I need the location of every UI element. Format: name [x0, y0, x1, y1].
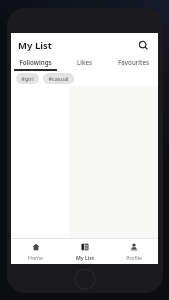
- staticText: #casual: [48, 75, 69, 82]
- button[interactable]: #casual: [43, 73, 74, 84]
- staticText: Home: [28, 254, 43, 261]
- button[interactable]: Likes: [60, 57, 109, 71]
- staticText: My List: [18, 39, 52, 52]
- staticText: Favourites: [118, 58, 149, 66]
- staticText: #girl: [21, 75, 34, 82]
- staticText: Profile: [126, 254, 142, 261]
- staticText: My List: [76, 254, 94, 261]
- button[interactable]: Favourites: [109, 57, 158, 71]
- button[interactable]: Home: [11, 239, 60, 264]
- button[interactable]: Followings: [11, 57, 60, 71]
- button[interactable]: Search: [135, 37, 151, 53]
- button[interactable]: My List: [60, 239, 109, 264]
- staticText: Likes: [77, 58, 92, 66]
- button[interactable]: Home button: [74, 268, 96, 290]
- staticText: Followings: [19, 58, 52, 66]
- button[interactable]: Profile: [109, 239, 158, 264]
- button[interactable]: #girl: [16, 73, 39, 84]
